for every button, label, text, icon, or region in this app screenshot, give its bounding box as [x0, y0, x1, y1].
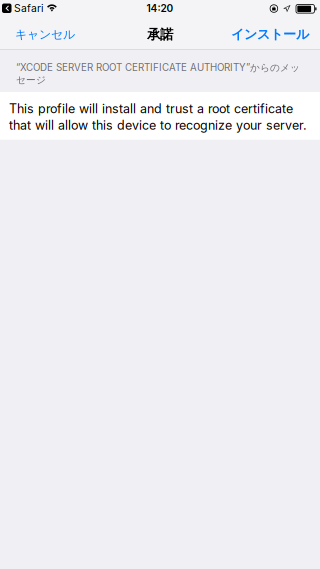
button[interactable]: キャンセル — [7, 20, 83, 49]
staticText: 14:20 — [146, 2, 173, 14]
staticText: “XCODE SERVER ROOT CERTIFICATE AUTHORITY… — [16, 61, 300, 86]
button[interactable]: インストール — [223, 20, 317, 49]
staticText: 承諾 — [147, 26, 173, 43]
staticText: Safari — [14, 2, 44, 15]
staticText: インストール — [231, 26, 309, 43]
staticText: This profile will install and trust a ro… — [9, 101, 307, 133]
button[interactable]: Back to Safari — [0, 0, 45, 18]
staticText: キャンセル — [15, 27, 75, 42]
